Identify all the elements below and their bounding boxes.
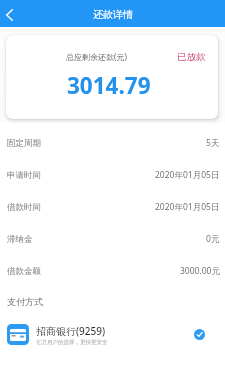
staticText: 0元 [206,233,220,245]
staticText: 5天 [206,137,220,149]
button[interactable]: 招商银行(9259) [0,316,225,353]
staticText: 申请时间 [7,170,41,181]
staticText: 借款时间 [7,202,41,213]
staticText: 3014.79 [67,70,151,101]
staticText: 固定周期 [7,138,41,149]
staticText: 已放款 [177,51,206,63]
staticText: 亿万用户的选择，更快更安全 [36,339,108,346]
staticText: 2020年01月05日 [155,169,220,181]
staticText: 总应剩余还款(元) [66,51,127,62]
button[interactable]: Back [0,0,20,27]
staticText: 招商银行(9259) [36,324,106,338]
staticText: 2020年01月05日 [155,201,220,213]
staticText: 借款金额 [7,266,41,277]
staticText: 支付方式 [7,296,43,307]
staticText: 3000.00元 [180,265,220,277]
staticText: 滞纳金 [7,234,33,245]
staticText: 还款详情 [93,8,133,21]
